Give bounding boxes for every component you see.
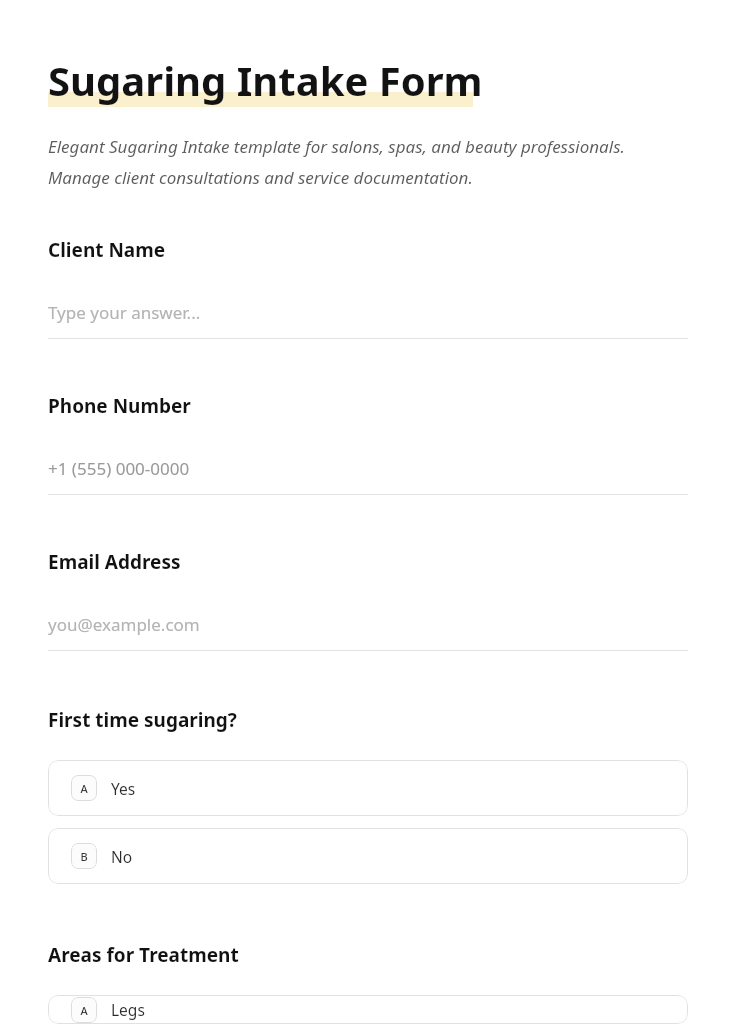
staticText: A	[80, 1003, 88, 1018]
button[interactable]: A	[48, 995, 688, 1024]
button[interactable]: Type your answer...	[48, 301, 688, 339]
staticText: Client Name	[48, 237, 166, 263]
staticText: +1 (555) 000-0000	[48, 457, 190, 480]
staticText: Email Address	[48, 549, 181, 575]
staticText: B	[80, 849, 88, 864]
staticText: A	[80, 781, 88, 796]
staticText: Legs	[111, 999, 145, 1020]
button[interactable]: B	[48, 828, 688, 884]
staticText: Phone Number	[48, 393, 191, 419]
staticText: First time sugaring?	[48, 707, 237, 733]
staticText: Sugaring Intake Form	[48, 53, 483, 107]
staticText: Areas for Treatment	[48, 942, 239, 968]
button[interactable]: +1 (555) 000-0000	[48, 457, 688, 495]
button[interactable]: you@example.com	[48, 613, 688, 651]
staticText: you@example.com	[48, 613, 200, 636]
staticText: Type your answer...	[48, 301, 201, 324]
staticText: Elegant Sugaring Intake template for sal…	[48, 135, 688, 189]
staticText: No	[111, 846, 133, 867]
staticText: Yes	[111, 778, 136, 799]
button[interactable]: A	[48, 760, 688, 816]
